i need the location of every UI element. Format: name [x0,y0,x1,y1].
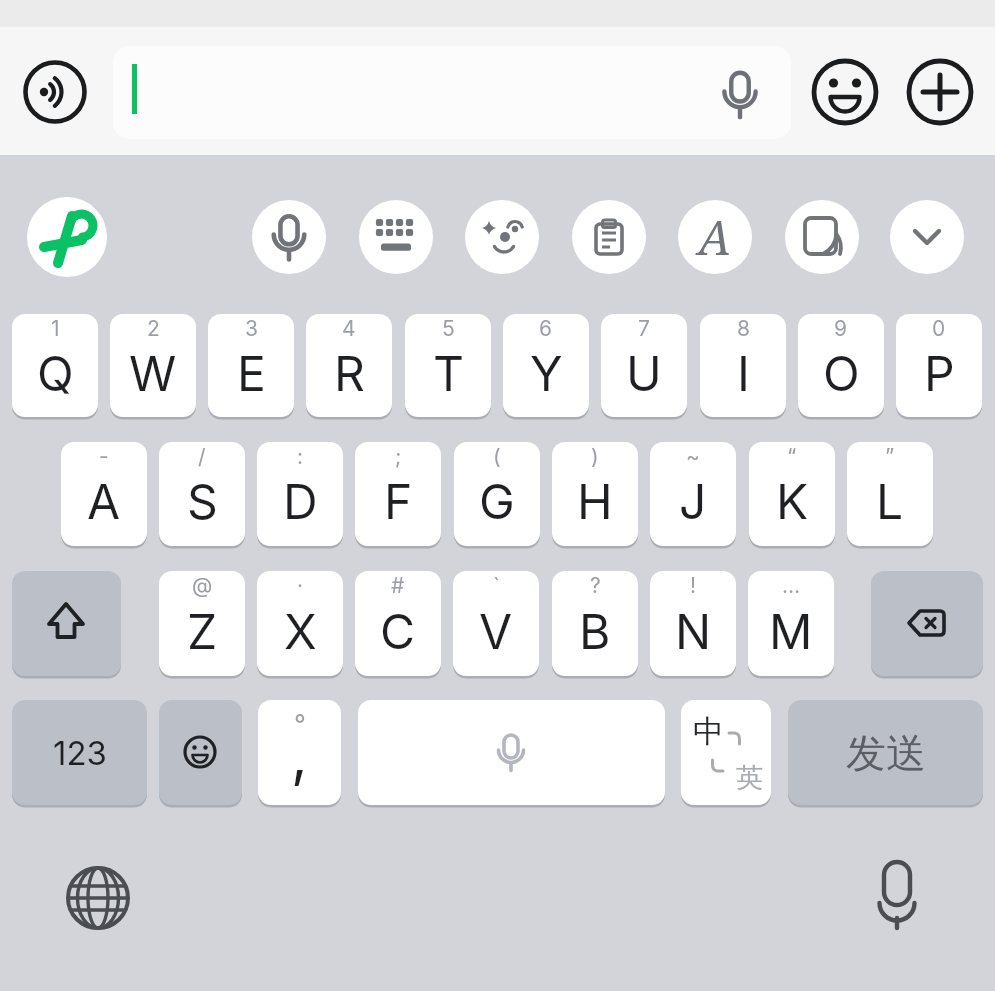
staticText: H [577,472,613,530]
staticText: N [675,602,712,660]
staticText: “ [787,444,797,469]
staticText: 英 [736,761,763,795]
staticText: R [334,344,365,402]
staticText: @ [192,573,213,598]
staticText: G [479,472,515,530]
staticText: P [924,344,955,402]
staticText: ` [493,573,500,598]
staticText: V [479,602,513,660]
staticText: ? [590,573,601,598]
staticText: - [99,444,109,469]
staticText: S [187,472,218,530]
staticText: E [237,344,266,402]
staticText: X [284,602,317,660]
staticText: : [297,444,304,469]
staticText: ! [690,573,697,598]
staticText: K [776,472,809,530]
staticText: U [626,344,662,402]
staticText: ; [395,444,402,469]
staticText: M [769,602,813,660]
staticText: 3 [245,316,258,341]
staticText: Y [530,344,563,402]
staticText: T [433,344,464,402]
staticText: Z [187,602,218,660]
staticText: / [198,444,206,469]
staticText: J [679,472,707,530]
staticText: ( [493,444,501,469]
staticText: 9 [834,316,848,341]
staticText: 8 [737,316,750,341]
staticText: 7 [638,316,650,341]
staticText: 中 [693,712,724,751]
staticText: # [391,573,405,598]
staticText: W [129,344,177,402]
staticText: A [698,205,732,269]
staticText: I [737,344,750,402]
staticText: 4 [342,316,356,341]
staticText: 1 [51,316,60,341]
staticText: A [87,472,121,530]
staticText: ~ [686,444,700,469]
staticText: D [283,472,318,530]
staticText: 发送 [846,728,926,778]
staticText: 0 [932,316,946,341]
staticText: 5 [442,316,455,341]
staticText: 2 [147,316,160,341]
staticText: F [384,472,413,530]
staticText: ° [294,708,306,739]
staticText: … [782,573,801,598]
staticText: ” [885,444,895,469]
staticText: Q [37,344,74,402]
staticText: , [291,720,308,790]
staticText: C [380,602,416,660]
staticText: 123 [53,733,107,773]
staticText: 6 [539,316,553,341]
staticText: L [876,472,904,530]
staticText: O [823,344,860,402]
staticText: ) [591,444,599,469]
staticText: · [297,573,304,598]
staticText: B [579,602,611,660]
